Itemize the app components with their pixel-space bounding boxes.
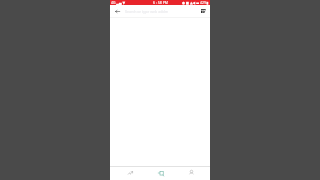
staticText: 4G ▂▄ ▼ (111, 0, 125, 5)
button[interactable]: Trends (115, 167, 145, 180)
button[interactable]: Account (176, 167, 207, 180)
staticText: ● ■ ▲◀ ▬ 42%▮ (182, 0, 209, 5)
button[interactable]: Back (110, 5, 124, 17)
staticText: Search or type web addre (125, 9, 169, 14)
staticText: 6 : 58 PM (153, 0, 168, 5)
button[interactable]: Tabs (145, 167, 176, 180)
button[interactable]: Scan QR code (196, 5, 210, 17)
